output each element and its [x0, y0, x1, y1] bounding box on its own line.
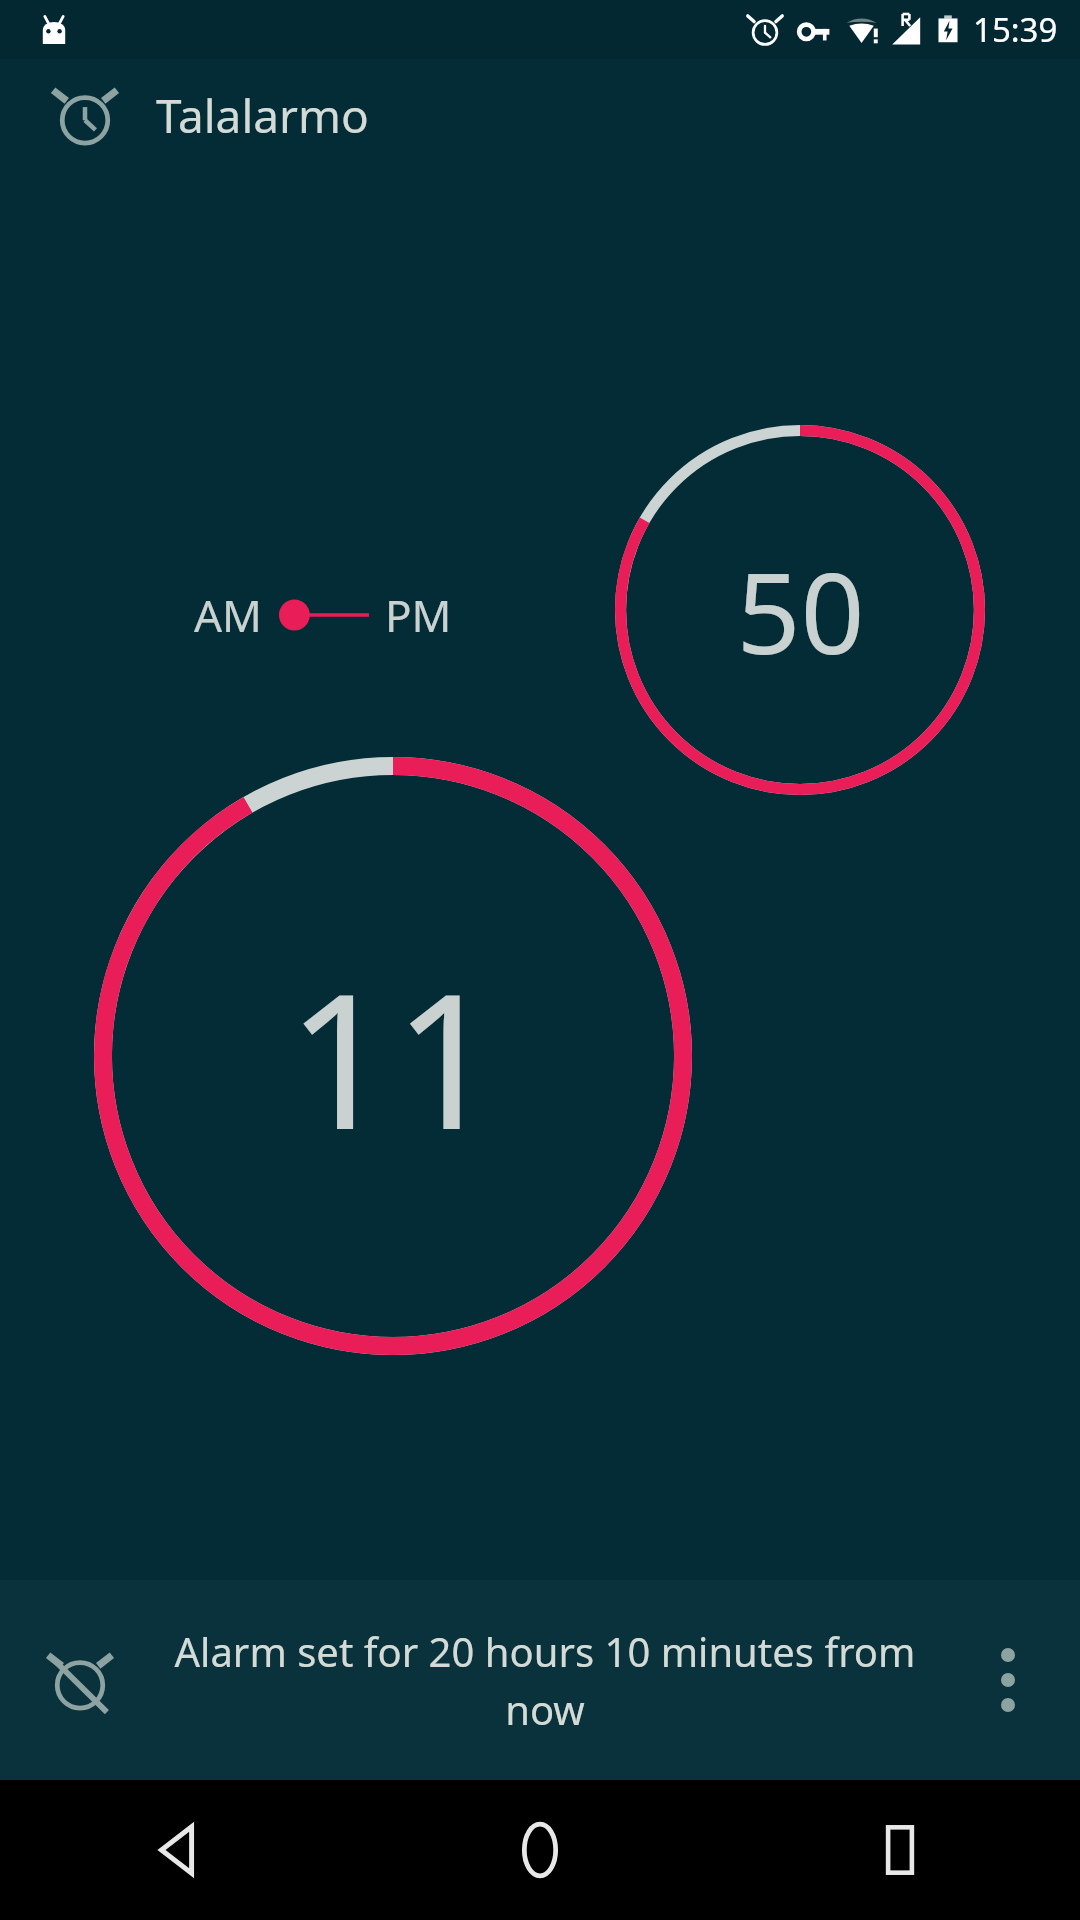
staticText: 15:39: [973, 7, 1058, 52]
button[interactable]: 11: [94, 757, 692, 1355]
button[interactable]: Recents: [720, 1780, 1080, 1920]
staticText: Talalarmo: [156, 84, 369, 147]
staticText: 50: [736, 534, 865, 687]
button[interactable]: AM: [188, 571, 458, 659]
staticText: Alarm set for 20 hours 10 minutes from n…: [134, 1624, 956, 1736]
button[interactable]: 50: [615, 425, 985, 795]
staticText: 11: [287, 930, 500, 1183]
button[interactable]: Alarm off: [36, 1636, 124, 1724]
button[interactable]: Home: [360, 1780, 720, 1920]
staticText: AM: [194, 585, 263, 645]
button[interactable]: Back: [0, 1780, 360, 1920]
button[interactable]: More options: [966, 1638, 1050, 1722]
staticText: PM: [385, 585, 452, 645]
